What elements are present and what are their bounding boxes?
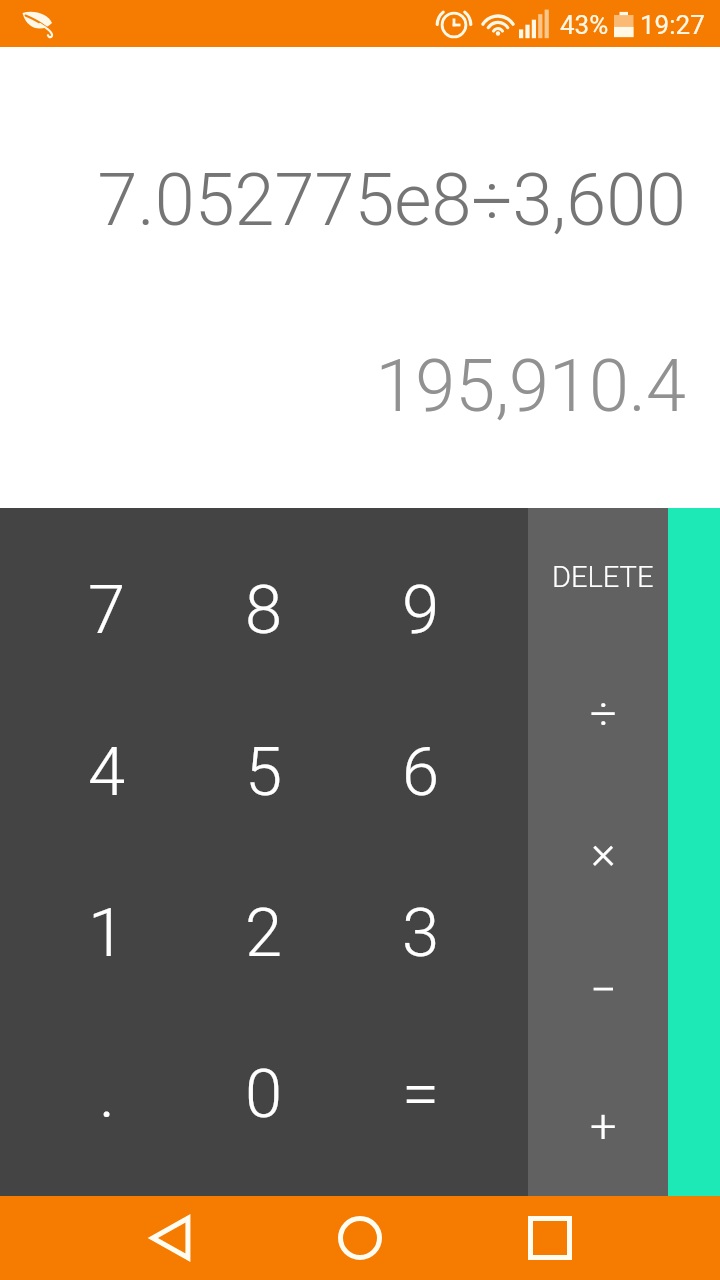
staticText: + [590, 1098, 617, 1153]
staticText: 7 [88, 571, 126, 650]
staticText: 19:27 [640, 10, 705, 40]
button[interactable]: . [0, 1024, 176, 1196]
staticText: . [99, 1055, 115, 1134]
staticText: 7.052775e8÷3,600 [97, 158, 686, 242]
staticText: 3 [402, 894, 440, 973]
button[interactable]: 4 [0, 680, 176, 852]
button[interactable]: Multiply [528, 782, 668, 920]
button[interactable]: 9 [352, 508, 528, 680]
staticText: 1 [88, 894, 126, 973]
staticText: 5 [245, 733, 283, 812]
staticText: − [590, 962, 617, 1017]
button[interactable]: Minus [528, 920, 668, 1058]
staticText: 0 [245, 1055, 283, 1134]
staticText: 43% [560, 10, 609, 40]
button[interactable]: Plus [528, 1058, 668, 1196]
button[interactable]: Home [318, 1196, 402, 1280]
button[interactable]: = [352, 1024, 528, 1196]
button[interactable]: 3 [352, 852, 528, 1024]
button[interactable]: 8 [176, 508, 352, 680]
staticText: = [402, 1055, 440, 1134]
button[interactable]: 1 [0, 852, 176, 1024]
staticText: 2 [245, 894, 283, 973]
button[interactable]: 5 [176, 680, 352, 852]
button[interactable]: 2 [176, 852, 352, 1024]
staticText: 8 [245, 571, 283, 650]
button[interactable]: Back [127, 1196, 211, 1280]
button[interactable]: Recent apps [508, 1196, 592, 1280]
staticText: DELETE [552, 560, 654, 594]
staticText: 4 [88, 733, 126, 812]
button[interactable]: DELETE [528, 508, 668, 645]
staticText: 9 [402, 571, 440, 650]
button[interactable]: 6 [352, 680, 528, 852]
staticText: × [591, 824, 616, 879]
button[interactable]: 0 [176, 1024, 352, 1196]
staticText: 6 [402, 733, 440, 812]
button[interactable]: 7 [0, 508, 176, 680]
staticText: 195,910.4 [375, 344, 686, 428]
staticText: ÷ [590, 686, 617, 741]
button[interactable]: Divide [528, 645, 668, 782]
